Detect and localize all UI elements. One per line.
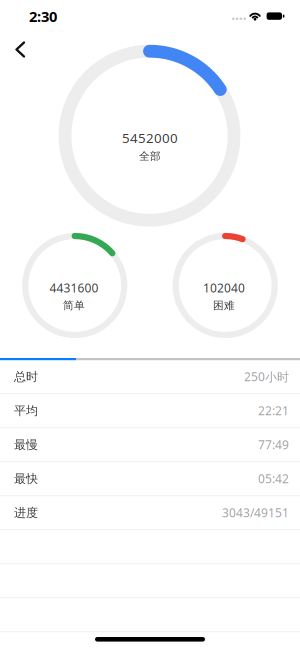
staticText: 3043/49151	[222, 505, 289, 521]
staticText: 总时	[14, 369, 38, 384]
staticText: 4431600	[49, 280, 98, 296]
staticText: 全部	[139, 150, 161, 163]
staticText: 22:21	[258, 403, 289, 419]
button[interactable]: Back	[0, 30, 40, 69]
staticText: 05:42	[258, 471, 289, 487]
staticText: 最慢	[14, 437, 38, 452]
staticText: 平均	[14, 403, 38, 418]
staticText: 2:30	[29, 6, 57, 26]
button[interactable]: 平均	[0, 394, 300, 428]
staticText: 进度	[14, 505, 38, 520]
staticText: 102040	[203, 280, 245, 296]
staticText: 困难	[213, 299, 235, 312]
staticText: 最快	[14, 471, 38, 486]
staticText: 简单	[63, 299, 85, 312]
button[interactable]: 总时	[0, 360, 300, 394]
staticText: 5452000	[122, 129, 178, 147]
button[interactable]: 最快	[0, 462, 300, 496]
button[interactable]: 最慢	[0, 428, 300, 462]
button[interactable]: 进度	[0, 496, 300, 530]
staticText: 77:49	[258, 437, 289, 453]
staticText: 250小时	[244, 369, 289, 385]
